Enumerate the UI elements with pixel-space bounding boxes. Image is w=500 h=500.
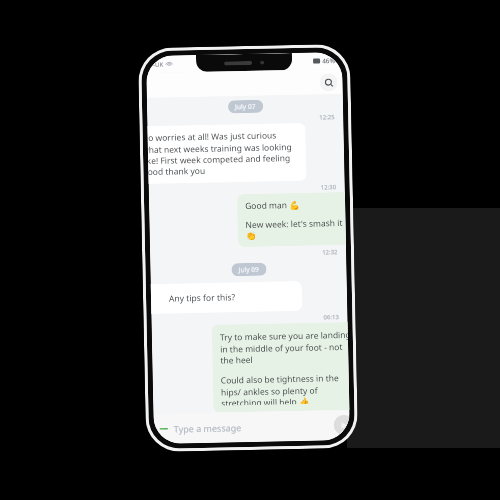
button[interactable]: Add attachment: [158, 423, 170, 435]
staticText: Any tips for this?: [169, 291, 236, 305]
button[interactable]: Try to make sure you are landing in the …: [212, 322, 349, 413]
button[interactable]: Any tips for this?: [151, 281, 302, 314]
staticText: 06:13: [323, 313, 340, 321]
button[interactable]: No worries at all! Was just curious what…: [147, 123, 307, 184]
staticText: -UK: [153, 61, 164, 69]
button[interactable]: Good man 💪: [237, 192, 346, 247]
staticText: July 09: [238, 265, 260, 274]
staticText: Good man 💪: [245, 199, 300, 212]
staticText: New week: let's smash it 👏: [245, 217, 346, 241]
staticText: Type a message: [174, 421, 242, 435]
button[interactable]: Type a message: [174, 419, 326, 435]
button[interactable]: Send: [333, 415, 350, 435]
staticText: 46%: [322, 56, 335, 65]
staticText: 12:32: [322, 248, 338, 256]
staticText: 12:25: [319, 113, 335, 121]
staticText: July 07: [235, 102, 256, 111]
staticText: No worries at all! Was just curious what…: [148, 129, 298, 178]
staticText: Could also be tightness in the hips/ ank…: [221, 372, 349, 406]
staticText: Try to make sure you are landing in the …: [220, 329, 348, 367]
staticText: 12:30: [321, 183, 337, 191]
button[interactable]: Search: [319, 73, 338, 91]
